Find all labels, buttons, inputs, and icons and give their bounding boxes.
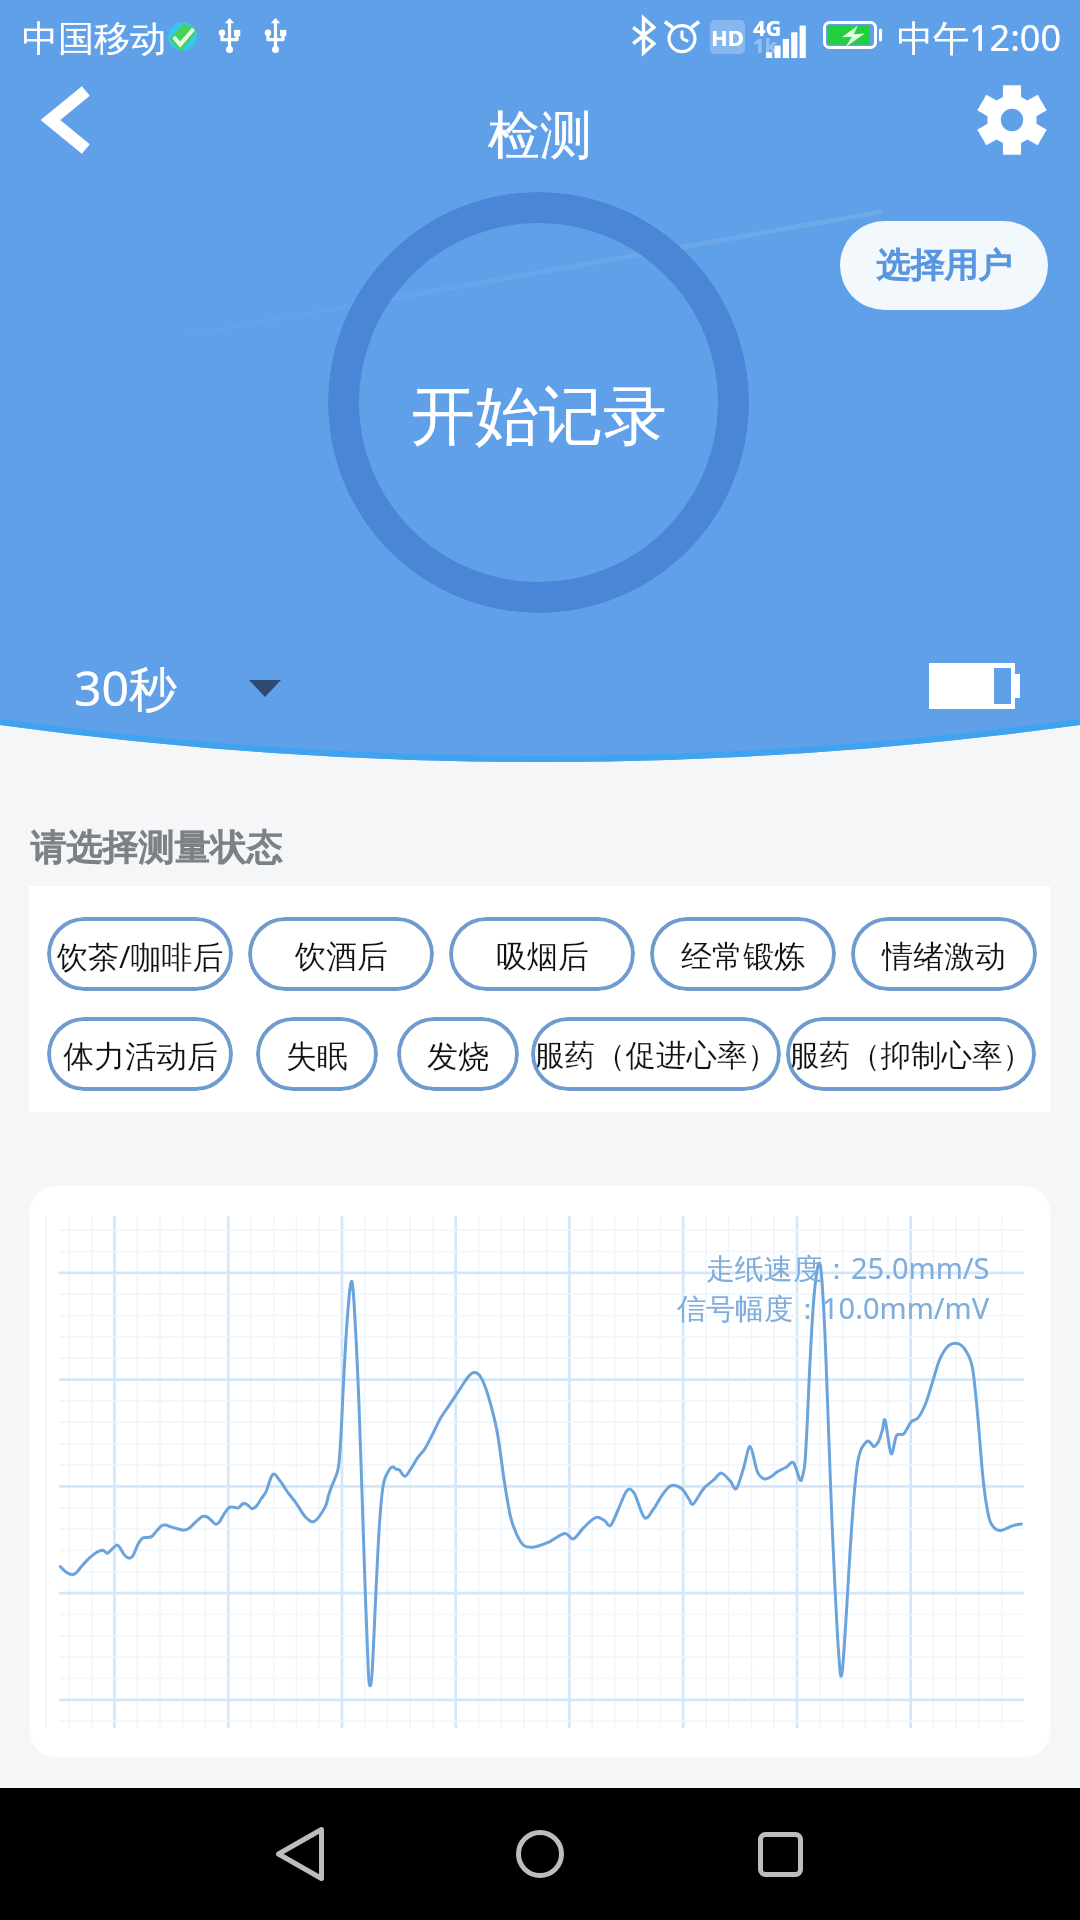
- staticText: 1k: [753, 32, 777, 59]
- staticText: HD: [711, 22, 744, 52]
- button[interactable]: Back: [240, 1794, 360, 1914]
- staticText: 失眠: [286, 1037, 348, 1076]
- staticText: 中午12:00: [897, 13, 1062, 62]
- button[interactable]: 选择用户: [840, 221, 1048, 310]
- button[interactable]: 饮茶/咖啡后: [47, 917, 233, 991]
- staticText: 30秒: [74, 655, 177, 721]
- button[interactable]: 情绪激动: [851, 917, 1037, 991]
- button[interactable]: 30秒: [74, 655, 281, 721]
- button[interactable]: 饮酒后: [248, 917, 434, 991]
- button[interactable]: 失眠: [256, 1017, 378, 1091]
- button[interactable]: Settings: [976, 84, 1048, 156]
- staticText: 开始记录: [411, 376, 667, 457]
- staticText: 4G: [753, 12, 782, 42]
- button[interactable]: 开始记录: [328, 192, 749, 613]
- staticText: 吸烟后: [496, 937, 589, 976]
- button[interactable]: Recents: [720, 1794, 840, 1914]
- button[interactable]: Back: [14, 80, 114, 160]
- staticText: 体力活动后: [63, 1037, 218, 1076]
- staticText: 饮茶/咖啡后: [57, 935, 224, 977]
- button[interactable]: 服药（促进心率）: [531, 1017, 781, 1091]
- staticText: 请选择测量状态: [30, 825, 282, 870]
- button[interactable]: 发烧: [397, 1017, 519, 1091]
- staticText: 服药（促进心率）: [534, 1037, 778, 1075]
- staticText: 信号幅度：10.0mm/mV: [677, 1288, 990, 1328]
- staticText: 走纸速度：25.0mm/S: [706, 1248, 990, 1288]
- staticText: 情绪激动: [882, 937, 1006, 976]
- button[interactable]: 体力活动后: [47, 1017, 233, 1091]
- staticText: 经常锻炼: [681, 937, 805, 976]
- staticText: 饮酒后: [295, 937, 388, 976]
- button[interactable]: 经常锻炼: [650, 917, 836, 991]
- staticText: 发烧: [427, 1037, 489, 1076]
- staticText: 选择用户: [876, 244, 1012, 287]
- button[interactable]: 吸烟后: [449, 917, 635, 991]
- staticText: 中国移动: [22, 16, 166, 61]
- button[interactable]: Home: [480, 1794, 600, 1914]
- button[interactable]: 服药（抑制心率）: [786, 1017, 1036, 1091]
- staticText: 检测: [488, 103, 592, 169]
- staticText: 服药（抑制心率）: [789, 1037, 1033, 1075]
